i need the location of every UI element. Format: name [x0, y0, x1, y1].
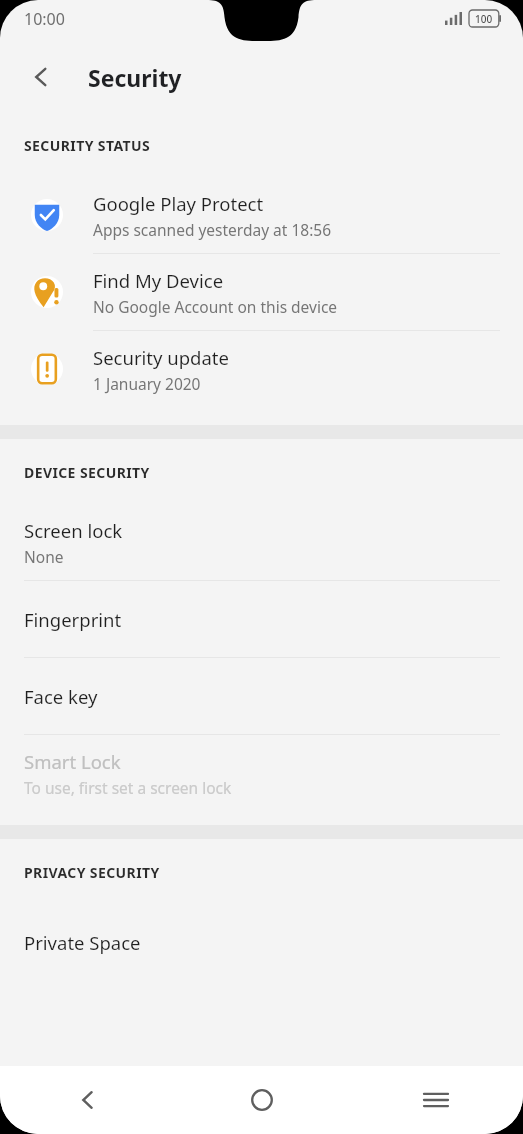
- button[interactable]: Private Space: [0, 904, 523, 980]
- staticText: Find My Device: [93, 268, 224, 293]
- staticText: 1 January 2020: [93, 373, 201, 394]
- staticText: Face key: [24, 684, 98, 709]
- staticText: Smart Lock: [24, 749, 121, 774]
- button[interactable]: Recent apps: [349, 1066, 523, 1134]
- button[interactable]: Find My Device: [0, 254, 523, 331]
- staticText: Google Play Protect: [93, 191, 264, 216]
- staticText: 10:00: [24, 8, 65, 30]
- button[interactable]: Google Play Protect: [0, 177, 523, 254]
- button[interactable]: Home: [175, 1066, 349, 1134]
- button[interactable]: Fingerprint: [0, 581, 523, 658]
- staticText: None: [24, 546, 64, 567]
- button[interactable]: Security update: [0, 331, 523, 407]
- staticText: Screen lock: [24, 518, 123, 543]
- button[interactable]: Face key: [0, 658, 523, 735]
- staticText: Apps scanned yesterday at 18:56: [93, 219, 332, 240]
- button[interactable]: Back: [0, 1066, 175, 1134]
- staticText: DEVICE SECURITY: [24, 463, 150, 482]
- button[interactable]: Screen lock: [0, 504, 523, 581]
- staticText: Private Space: [24, 930, 141, 955]
- staticText: Fingerprint: [24, 607, 122, 632]
- staticText: Security update: [93, 345, 229, 370]
- button[interactable]: Smart Lock: [0, 735, 523, 811]
- staticText: 100: [475, 12, 493, 26]
- staticText: Security: [88, 62, 182, 93]
- staticText: To use, first set a screen lock: [24, 777, 232, 798]
- staticText: PRIVACY SECURITY: [24, 863, 160, 882]
- staticText: SECURITY STATUS: [24, 136, 151, 155]
- button[interactable]: Back: [18, 54, 64, 100]
- staticText: No Google Account on this device: [93, 296, 338, 317]
